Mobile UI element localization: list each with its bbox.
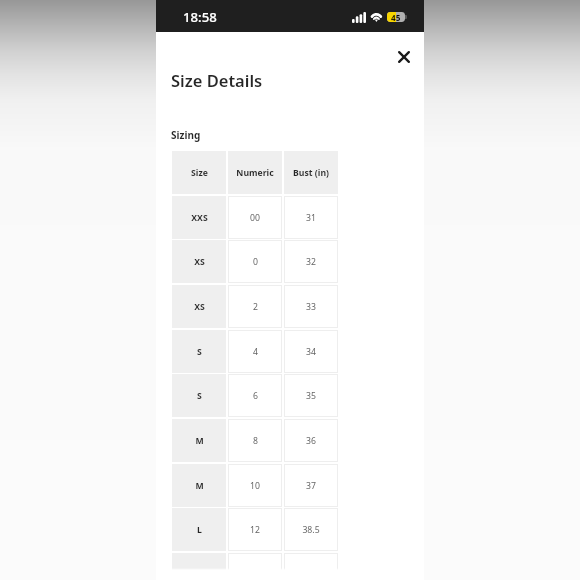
staticText: L xyxy=(197,524,202,536)
staticText: Sizing xyxy=(171,128,201,142)
staticText: 10 xyxy=(250,480,260,492)
staticText: 6 xyxy=(253,390,258,402)
staticText: M xyxy=(195,435,204,447)
staticText: M xyxy=(195,480,204,492)
staticText: 32 xyxy=(306,256,316,268)
button[interactable]: Close xyxy=(389,42,419,72)
staticText: 00 xyxy=(250,212,260,224)
staticText: Numeric xyxy=(236,167,274,179)
staticText: 35 xyxy=(306,390,316,402)
staticText: 18:58 xyxy=(183,8,217,26)
staticText: 0 xyxy=(253,256,258,268)
staticText: 45 xyxy=(391,12,401,22)
staticText: Bust (in) xyxy=(293,167,329,179)
staticText: XS xyxy=(194,301,205,313)
staticText: 8 xyxy=(253,435,258,447)
staticText: XS xyxy=(194,256,205,268)
staticText: 2 xyxy=(253,301,258,313)
staticText: 12 xyxy=(250,524,260,536)
staticText: Size Details xyxy=(171,69,263,91)
staticText: 36 xyxy=(306,435,316,447)
staticText: S xyxy=(197,346,202,358)
staticText: 34 xyxy=(306,346,316,358)
staticText: 38.5 xyxy=(302,524,320,536)
staticText: Size xyxy=(191,167,208,179)
staticText: XXS xyxy=(191,212,208,224)
staticText: 4 xyxy=(253,346,258,358)
staticText: 33 xyxy=(306,301,316,313)
staticText: 31 xyxy=(306,212,316,224)
staticText: 37 xyxy=(306,480,316,492)
staticText: S xyxy=(197,390,202,402)
